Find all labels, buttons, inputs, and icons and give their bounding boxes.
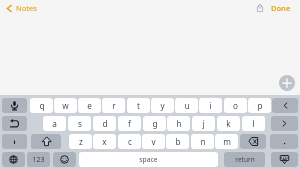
staticText: space: [139, 155, 158, 164]
staticText: z: [79, 136, 83, 147]
staticText: b: [175, 136, 181, 147]
button[interactable]: h: [167, 116, 190, 131]
staticText: i: [209, 100, 212, 111]
staticText: Done: [271, 3, 291, 13]
button[interactable]: q: [30, 98, 53, 113]
button[interactable]: return: [224, 152, 265, 167]
staticText: 123: [32, 155, 45, 165]
button[interactable]: m: [215, 134, 238, 149]
button[interactable]: shift: [31, 134, 61, 149]
staticText: f: [128, 118, 131, 129]
button[interactable]: v: [142, 134, 165, 149]
button[interactable]: c: [118, 134, 141, 149]
staticText: r: [112, 100, 116, 111]
button[interactable]: mic: [2, 98, 27, 113]
button[interactable]: s: [68, 116, 91, 131]
button[interactable]: e: [78, 98, 101, 113]
staticText: Notes: [16, 3, 37, 13]
button[interactable]: Done: [271, 3, 291, 13]
button[interactable]: o: [224, 98, 247, 113]
button[interactable]: del: [240, 134, 266, 149]
button[interactable]: dismiss: [271, 152, 298, 167]
staticText: p: [257, 100, 263, 111]
staticText: x: [102, 136, 107, 147]
staticText: return: [235, 155, 255, 164]
button[interactable]: y: [151, 98, 174, 113]
button[interactable]: t: [127, 98, 150, 113]
staticText: k: [226, 118, 231, 129]
button[interactable]: f: [118, 116, 141, 131]
button[interactable]: p: [248, 98, 271, 113]
staticText: a: [52, 118, 57, 129]
button[interactable]: b: [166, 134, 189, 149]
staticText: q: [39, 100, 45, 111]
button[interactable]: a: [43, 116, 66, 131]
button[interactable]: x: [93, 134, 116, 149]
staticText: l: [252, 118, 255, 129]
button[interactable]: j: [192, 116, 215, 131]
button[interactable]: 123: [27, 152, 50, 167]
button[interactable]: emoji: [53, 152, 76, 167]
button[interactable]: z: [69, 134, 92, 149]
button[interactable]: Add: [279, 75, 295, 91]
staticText: t: [137, 100, 140, 111]
button[interactable]: Notes: [6, 3, 37, 13]
button[interactable]: g: [143, 116, 166, 131]
staticText: u: [184, 100, 190, 111]
button[interactable]: lt: [272, 98, 298, 113]
staticText: j: [202, 118, 205, 129]
staticText: v: [151, 136, 156, 147]
button[interactable]: l: [242, 116, 265, 131]
staticText: m: [223, 136, 231, 147]
button[interactable]: Share: [253, 1, 266, 14]
staticText: e: [87, 100, 92, 111]
button[interactable]: d: [93, 116, 116, 131]
button[interactable]: w: [54, 98, 77, 113]
button[interactable]: globe: [2, 152, 25, 167]
staticText: n: [200, 136, 206, 147]
staticText: c: [128, 136, 132, 147]
staticText: d: [102, 118, 108, 129]
button[interactable]: apos: [2, 134, 27, 149]
button[interactable]: i: [199, 98, 222, 113]
button[interactable]: undo: [2, 116, 27, 131]
staticText: h: [176, 118, 182, 129]
staticText: y: [160, 100, 165, 111]
staticText: g: [152, 118, 158, 129]
button[interactable]: period: [270, 134, 298, 149]
staticText: o: [233, 100, 238, 111]
staticText: s: [78, 118, 82, 129]
button[interactable]: space: [79, 152, 218, 167]
button[interactable]: k: [217, 116, 240, 131]
button[interactable]: u: [175, 98, 198, 113]
button[interactable]: n: [191, 134, 214, 149]
button[interactable]: r: [102, 98, 125, 113]
staticText: w: [62, 100, 69, 111]
button[interactable]: gt: [271, 116, 298, 131]
